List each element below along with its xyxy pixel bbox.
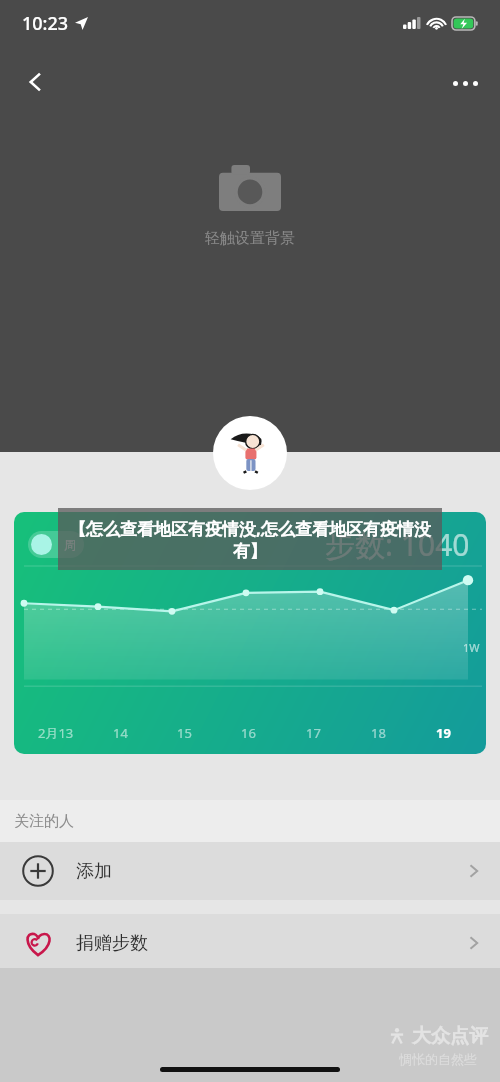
staticText: 2月13 <box>38 724 74 742</box>
staticText: 【怎么查看地区有疫情没,怎么查看地区有疫情没有】 <box>58 517 442 562</box>
staticText: 18 <box>371 724 386 742</box>
staticText: 添加 <box>76 860 112 883</box>
button[interactable]: 周 <box>14 512 486 754</box>
button[interactable]: More options <box>442 60 488 106</box>
staticText: 19 <box>436 724 451 742</box>
staticText: 16 <box>241 724 256 742</box>
button[interactable]: Profile avatar <box>213 416 287 490</box>
staticText: 步数: 1040 <box>325 524 470 565</box>
staticText: 轻触设置背景 <box>205 229 295 248</box>
staticText: 关注的人 <box>14 812 74 831</box>
staticText: 10:23 <box>22 11 69 36</box>
staticText: 大众点评 <box>412 1024 488 1048</box>
button[interactable]: 捐赠步数 <box>0 914 500 972</box>
button[interactable]: 周 <box>28 531 84 558</box>
staticText: 周 <box>64 537 76 552</box>
button[interactable]: Back <box>14 60 58 104</box>
staticText: 14 <box>113 724 128 742</box>
staticText: 惆怅的自然些 <box>399 1051 477 1067</box>
staticText: 17 <box>306 724 321 742</box>
button[interactable]: 添加 <box>0 842 500 900</box>
staticText: 15 <box>177 724 192 742</box>
staticText: 1W <box>463 640 480 655</box>
staticText: 捐赠步数 <box>76 932 148 955</box>
